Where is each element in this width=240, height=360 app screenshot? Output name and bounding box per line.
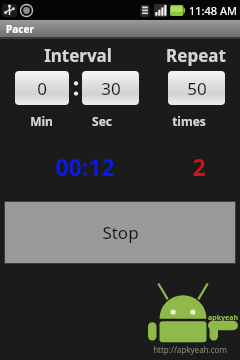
staticText: Min bbox=[30, 113, 53, 129]
staticText: 00:12 bbox=[55, 151, 115, 181]
staticText: http://apkyeah.com bbox=[153, 344, 227, 355]
staticText: apkyeah bbox=[208, 313, 238, 323]
staticText: Repeat bbox=[166, 44, 226, 66]
staticText: Interval bbox=[44, 44, 112, 66]
staticText: Stop bbox=[102, 221, 139, 244]
staticText: 2 bbox=[192, 151, 206, 181]
button[interactable]: Stop bbox=[5, 202, 235, 263]
staticText: times bbox=[172, 113, 206, 129]
staticText: 30 bbox=[101, 77, 121, 100]
button[interactable]: 0 bbox=[15, 71, 69, 105]
staticText: 0 bbox=[37, 77, 47, 100]
button[interactable]: 50 bbox=[168, 71, 225, 105]
staticText: 11:48 AM bbox=[189, 3, 237, 18]
staticText: Pacer bbox=[6, 22, 34, 36]
staticText: Sec bbox=[92, 113, 112, 129]
button[interactable]: 30 bbox=[82, 71, 139, 105]
staticText: 50 bbox=[187, 77, 207, 100]
